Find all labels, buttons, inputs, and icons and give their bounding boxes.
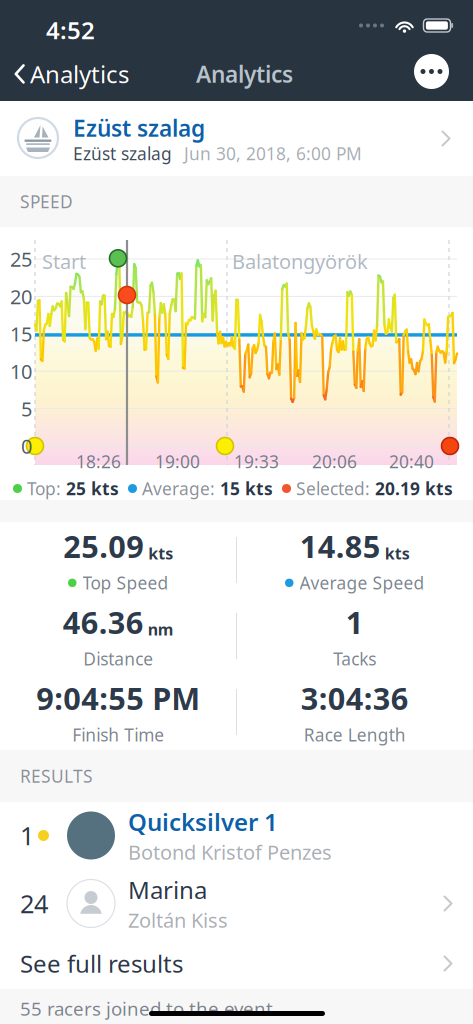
- staticText: kts: [385, 543, 410, 564]
- button[interactable]: 24: [0, 869, 473, 938]
- staticText: Top:: [22, 477, 66, 500]
- staticText: Average:: [137, 477, 220, 500]
- staticText: Botond Kristof Penzes: [128, 839, 332, 865]
- staticText: kts: [148, 543, 173, 564]
- staticText: 24: [20, 887, 48, 920]
- staticText: 0: [21, 433, 32, 459]
- staticText: Analytics: [196, 59, 293, 89]
- staticText: 25.09: [63, 526, 144, 566]
- staticText: Zoltán Kiss: [128, 907, 228, 933]
- button[interactable]: Ezüst szalag: [0, 101, 473, 176]
- staticText: 14.85: [300, 526, 381, 566]
- button[interactable]: 1: [0, 802, 473, 869]
- staticText: 18:26: [76, 450, 121, 473]
- staticText: Start: [42, 248, 86, 275]
- staticText: 10: [10, 358, 32, 385]
- staticText: SPEED: [20, 190, 73, 213]
- staticText: 46.36: [63, 602, 144, 642]
- staticText: Race Length: [304, 723, 406, 746]
- button[interactable]: Analytics: [1, 49, 142, 99]
- staticText: 1: [20, 819, 34, 852]
- staticText: See full results: [20, 948, 183, 979]
- button[interactable]: See full results: [0, 938, 473, 989]
- staticText: Balatongyörök: [232, 248, 368, 275]
- staticText: Distance: [83, 647, 153, 670]
- staticText: Quicksilver 1: [128, 806, 278, 838]
- staticText: 20.19 kts: [375, 477, 453, 500]
- staticText: Ezüst szalag: [73, 113, 205, 143]
- staticText: 19:00: [155, 450, 200, 473]
- staticText: 3:04:36: [301, 678, 409, 718]
- staticText: Marina: [128, 874, 207, 906]
- staticText: Top Speed: [82, 571, 168, 594]
- staticText: 9:04:55 PM: [36, 678, 200, 718]
- staticText: RESULTS: [20, 764, 93, 787]
- staticText: Selected:: [291, 477, 375, 500]
- staticText: 25: [10, 246, 32, 272]
- staticText: 4:52: [46, 14, 95, 46]
- staticText: Ezüst szalag: [73, 142, 172, 165]
- staticText: 25 kts: [66, 477, 119, 500]
- staticText: Jun 30, 2018, 6:00 PM: [184, 142, 362, 165]
- staticText: 20:06: [312, 450, 357, 473]
- staticText: Tacks: [333, 647, 376, 670]
- button[interactable]: More options: [414, 54, 449, 89]
- staticText: 20:40: [389, 450, 434, 473]
- staticText: 5: [21, 395, 32, 422]
- staticText: Analytics: [30, 58, 129, 90]
- staticText: nm: [148, 619, 174, 640]
- staticText: 15: [10, 320, 32, 347]
- staticText: 20: [10, 283, 32, 310]
- staticText: 15 kts: [220, 477, 273, 500]
- staticText: 19:33: [234, 450, 279, 473]
- staticText: 1: [346, 602, 364, 642]
- staticText: Finish Time: [72, 723, 164, 746]
- staticText: Average Speed: [299, 571, 424, 594]
- staticText: 55 racers joined to the event: [20, 996, 273, 1021]
